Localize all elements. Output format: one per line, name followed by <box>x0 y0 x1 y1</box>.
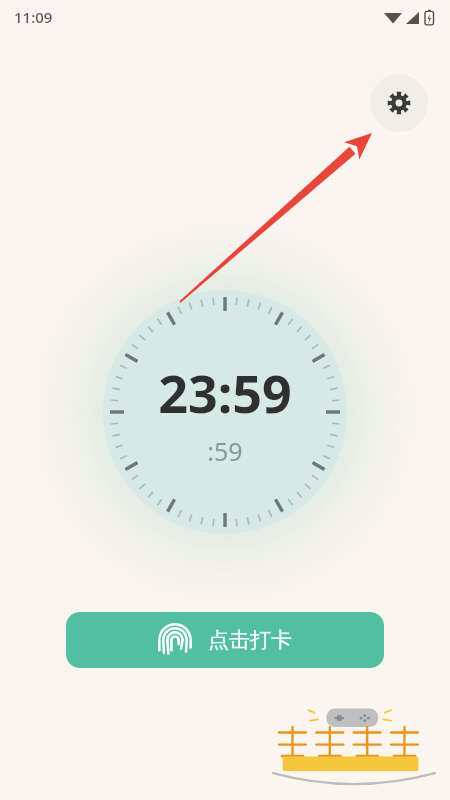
button[interactable]: 23:59 <box>103 290 347 534</box>
staticText: 点击打卡 <box>208 627 292 653</box>
button[interactable]: Settings <box>370 74 428 132</box>
staticText: 11:09 <box>14 7 53 27</box>
staticText: :59 <box>207 434 243 468</box>
staticText: 23:59 <box>158 357 292 428</box>
button[interactable]: 点击打卡 <box>66 612 384 668</box>
